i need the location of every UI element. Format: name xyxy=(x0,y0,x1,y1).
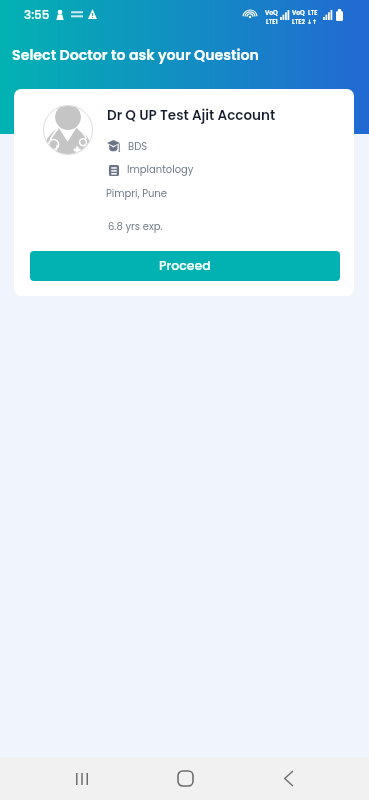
staticText: LTE2 xyxy=(292,18,305,26)
button[interactable]: Back xyxy=(267,757,309,800)
staticText: Dr Q UP Test Ajit Account xyxy=(107,106,276,125)
staticText: LTE1 xyxy=(266,18,278,26)
staticText: LTE xyxy=(308,9,318,17)
staticText: VoQ xyxy=(265,9,278,17)
button[interactable]: Proceed xyxy=(30,251,340,281)
button[interactable]: Home xyxy=(164,757,206,800)
staticText: Select Doctor to ask your Question xyxy=(12,45,259,65)
staticText: ↓↑ xyxy=(307,18,318,25)
staticText: 6.8 yrs exp. xyxy=(108,219,163,233)
staticText: Implantology xyxy=(127,162,194,176)
staticText: Pimpri, Pune xyxy=(106,186,167,200)
staticText: BDS xyxy=(128,139,148,153)
staticText: VoQ xyxy=(292,9,305,17)
staticText: 3:55 xyxy=(24,6,50,23)
staticText: Proceed xyxy=(159,257,211,274)
button[interactable]: Recent apps xyxy=(61,757,103,800)
